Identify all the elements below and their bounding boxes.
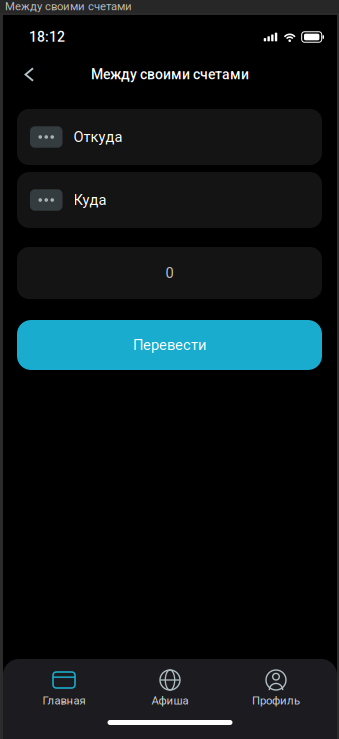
button[interactable]: Главная [11,668,117,709]
staticText: Между своими счетами [91,66,249,83]
staticText: Перевести [133,336,206,354]
staticText: Куда [73,191,106,209]
staticText: Между своими счетами [5,0,132,13]
staticText: Откуда [73,128,122,146]
button[interactable]: Перевести [17,320,322,370]
staticText: Профиль [252,694,300,707]
staticText: 18:12 [29,29,65,45]
button[interactable]: 0 [17,247,322,299]
staticText: 0 [165,264,173,282]
staticText: Афиша [151,694,188,707]
button[interactable]: Афиша [117,668,223,709]
button[interactable]: Back [13,58,45,91]
staticText: Главная [42,694,85,707]
button[interactable]: Куда [17,172,322,228]
button[interactable]: Профиль [223,668,329,709]
button[interactable]: Откуда [17,109,322,165]
